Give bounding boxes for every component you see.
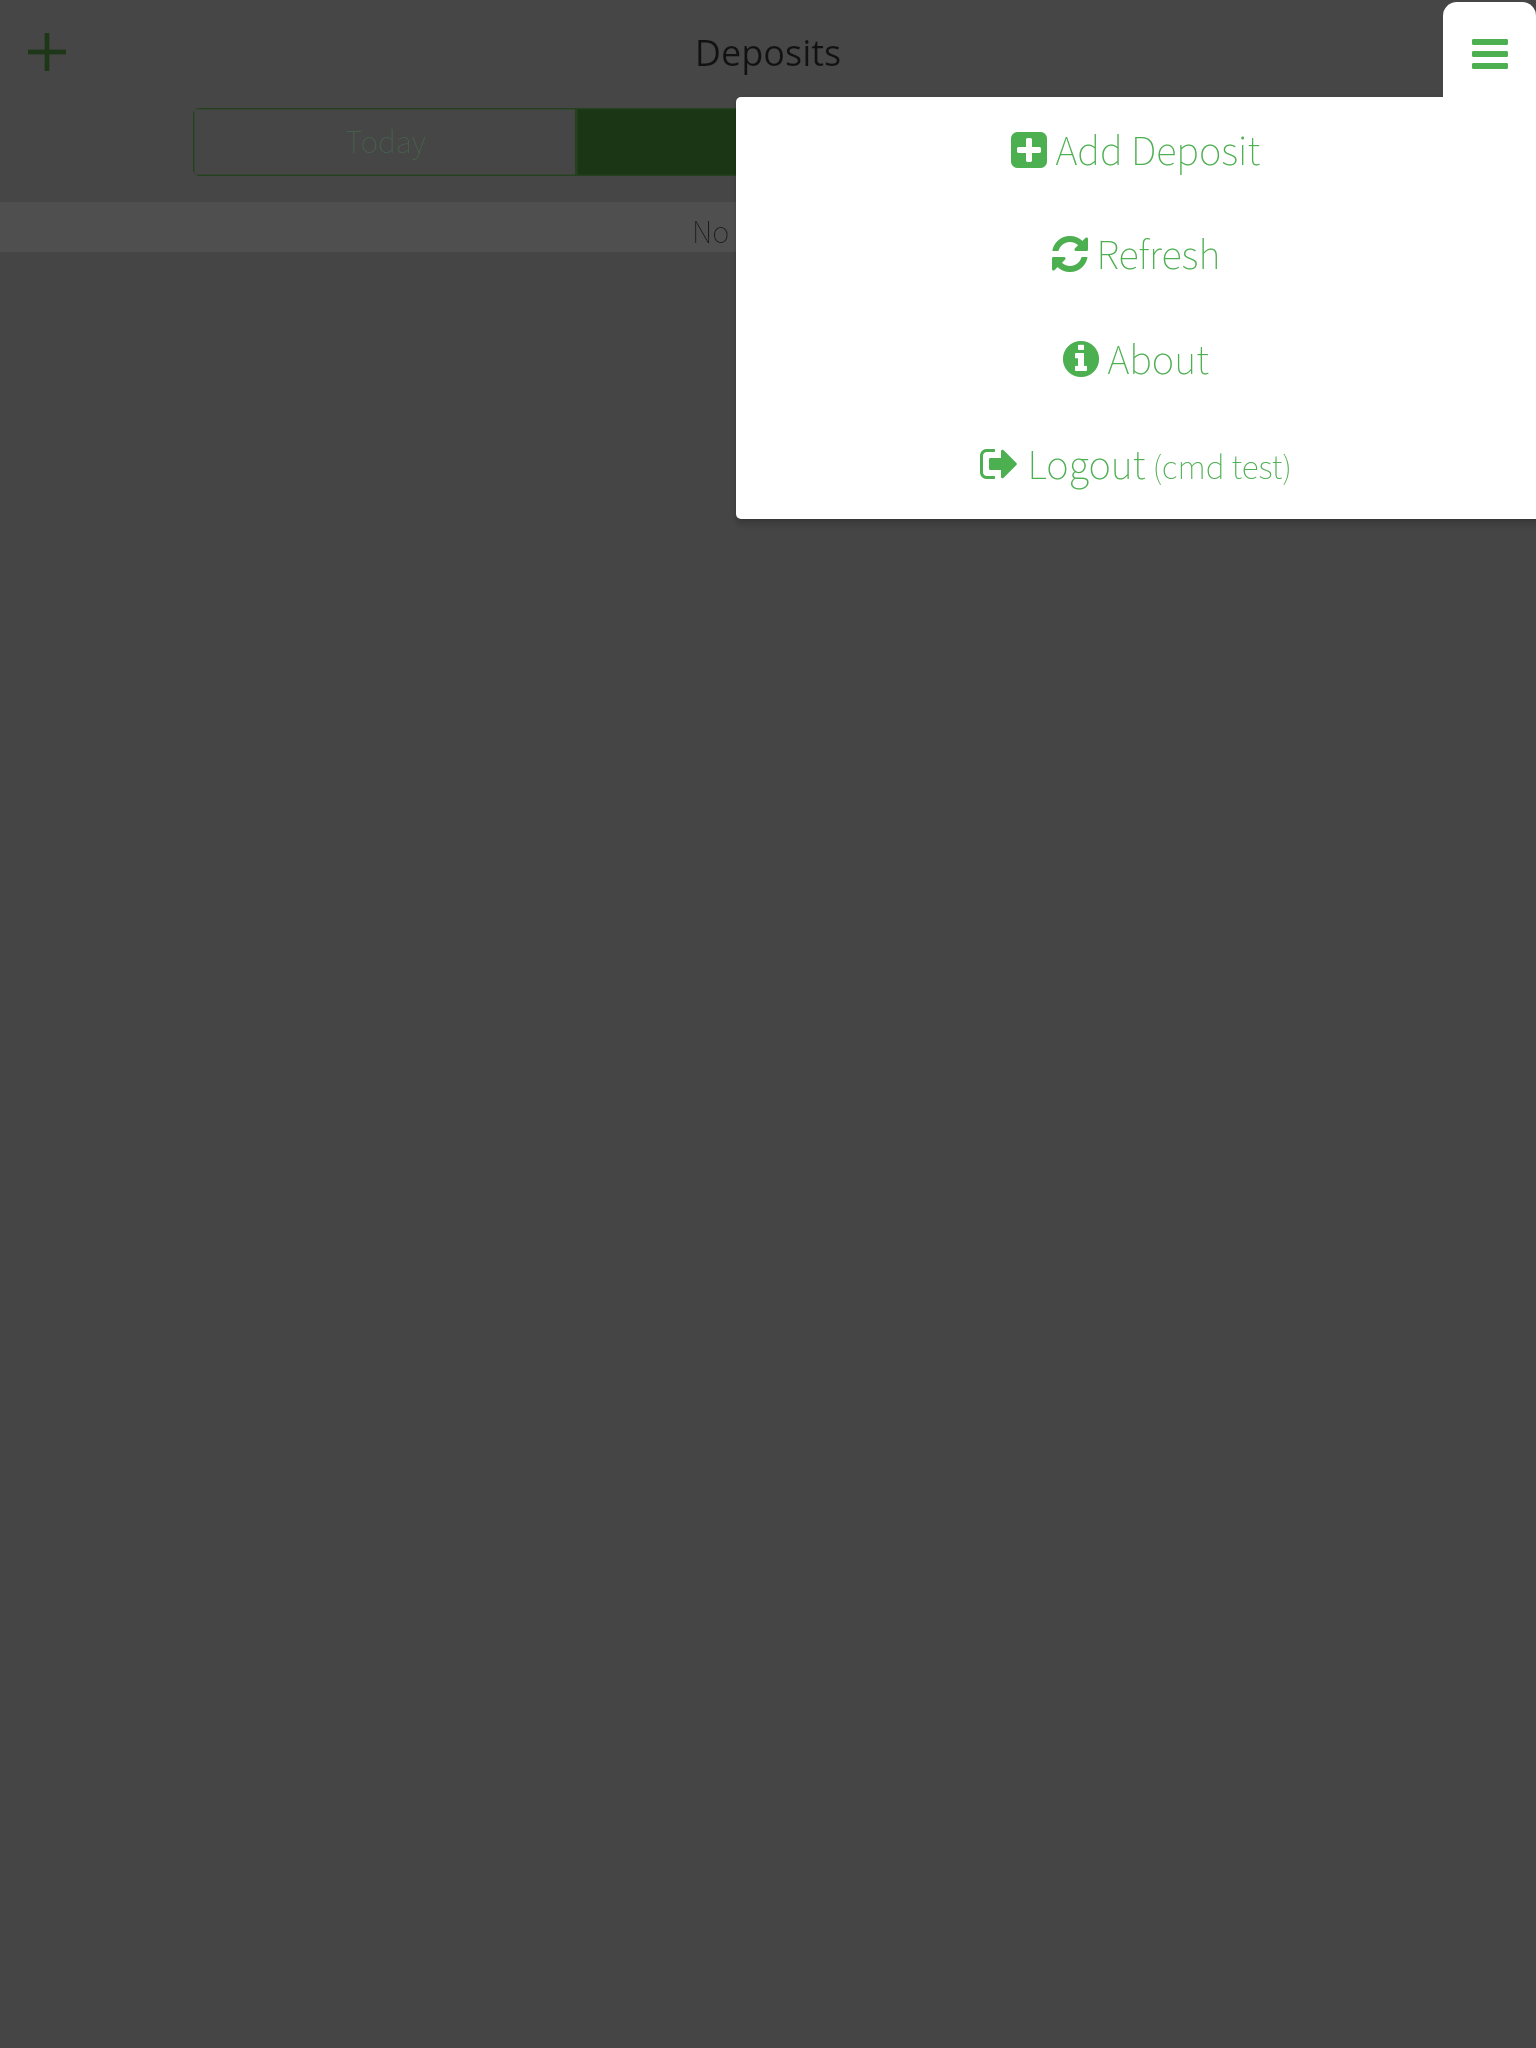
button[interactable]:  About [736,310,1536,412]
staticText:  About [1063,331,1209,391]
staticText:  Refresh [1052,226,1221,286]
button[interactable]: Menu [1443,2,1536,98]
staticText: Today [345,119,426,166]
button[interactable]: Add deposit [14,19,79,84]
staticText:  Add Deposit [1011,122,1261,182]
staticText: No deposits [692,210,845,256]
staticText:  Logout (cmd test) [980,436,1292,496]
button[interactable]: Pending [960,108,1343,176]
staticText: Deposits [0,28,1536,77]
button[interactable]:  Refresh [736,205,1536,307]
button[interactable]:  Add Deposit [736,101,1536,203]
button[interactable]: Today [193,108,577,176]
button[interactable]: All [577,108,960,176]
staticText: Pending [1097,119,1206,166]
button[interactable]:  Logout (cmd test) [736,415,1536,517]
staticText:  [1472,33,1508,75]
